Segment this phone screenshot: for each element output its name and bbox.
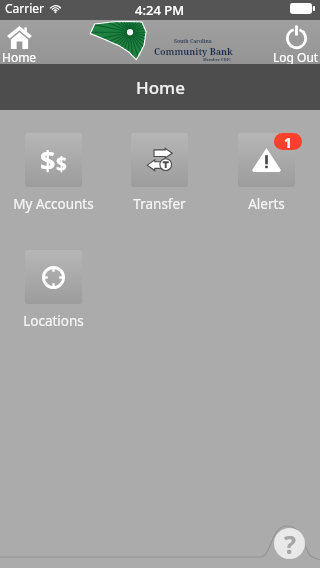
button[interactable]: Home <box>0 20 38 64</box>
staticText: South Carolina <box>174 38 212 45</box>
button[interactable]: Locations <box>0 250 106 330</box>
staticText: $ <box>40 142 56 179</box>
staticText: Alerts <box>248 195 285 213</box>
staticText: Member FDIC <box>203 57 231 62</box>
button[interactable]: $ <box>0 133 106 213</box>
staticText: Transfer <box>133 195 186 213</box>
staticText: Locations <box>23 312 84 330</box>
button[interactable]: Help <box>274 528 305 559</box>
button[interactable]: Log Out <box>272 20 320 64</box>
staticText: My Accounts <box>13 195 94 213</box>
staticText: Community Bank <box>154 45 233 57</box>
button[interactable]: Transfer <box>106 133 213 213</box>
staticText: Log Out <box>273 49 319 64</box>
staticText: 1 <box>284 133 293 150</box>
staticText: ? <box>284 528 296 558</box>
staticText: $ <box>56 151 67 177</box>
button[interactable]: 1 <box>213 133 320 213</box>
staticText: Carrier <box>5 0 45 16</box>
staticText: 4:24 PM <box>135 1 185 19</box>
staticText: Home <box>136 76 185 99</box>
staticText: Home <box>2 49 37 64</box>
